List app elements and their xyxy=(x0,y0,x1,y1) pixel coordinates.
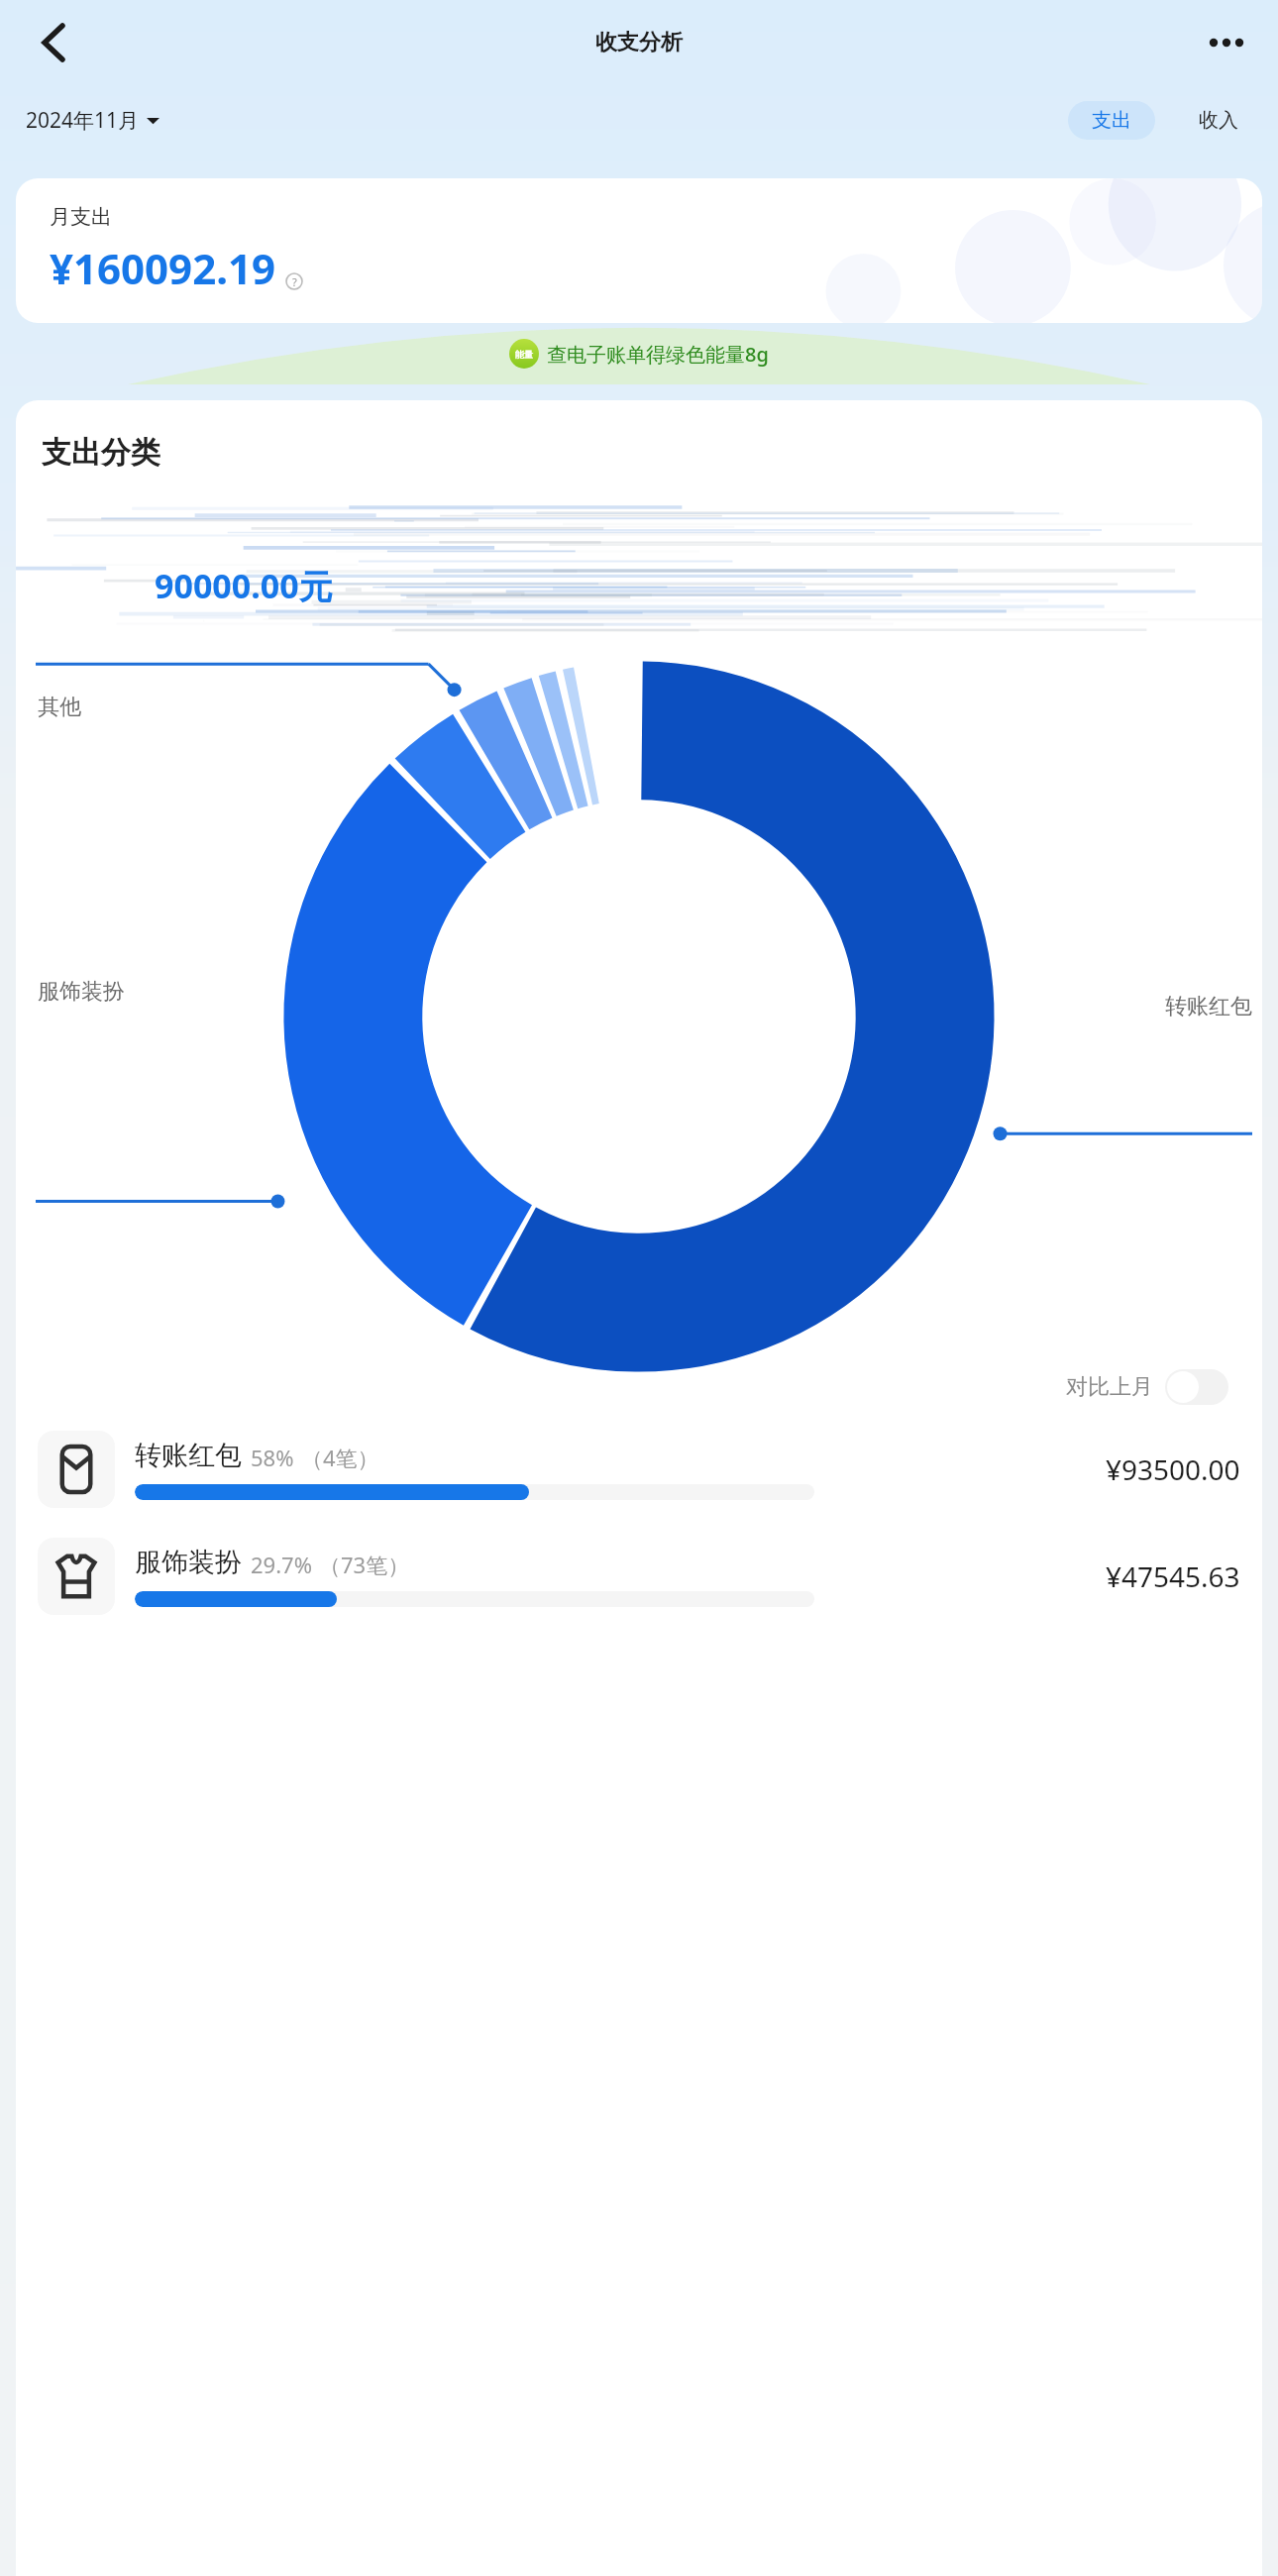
staticText: 29.7% xyxy=(251,1550,312,1579)
button[interactable]: 转账红包 xyxy=(16,1425,1262,1514)
staticText: （4笔） xyxy=(301,1443,379,1472)
staticText: 月支出 xyxy=(50,204,112,230)
staticText: 能量 xyxy=(515,349,533,360)
staticText: （73笔） xyxy=(319,1550,410,1579)
staticText: ? xyxy=(292,274,297,289)
staticText: 2024年11月 xyxy=(26,106,140,135)
button[interactable]: 收入 xyxy=(1185,101,1252,140)
staticText: 收入 xyxy=(1199,108,1238,133)
staticText: 支出分类 xyxy=(42,434,160,472)
staticText: 支出 xyxy=(1092,108,1131,133)
button[interactable]: 支出 xyxy=(1068,101,1155,140)
button[interactable]: 能量 xyxy=(501,335,777,373)
button[interactable]: Help xyxy=(285,272,303,290)
button[interactable]: 服饰装扮 xyxy=(16,1532,1262,1621)
staticText: 收支分析 xyxy=(595,29,683,56)
staticText: 对比上月 xyxy=(1066,1373,1153,1401)
staticText: 90000.00元 xyxy=(155,563,333,608)
staticText: ¥47545.63 xyxy=(1106,1557,1240,1595)
staticText: 58% xyxy=(251,1443,294,1472)
staticText: ¥160092.19 xyxy=(50,240,276,296)
staticText: ¥93500.00 xyxy=(1106,1450,1240,1488)
button[interactable]: 2024年11月 xyxy=(20,102,165,139)
button[interactable]: Back xyxy=(18,7,89,78)
staticText: 服饰装扮 xyxy=(135,1546,242,1579)
staticText: 查电子账单得绿色能量8g xyxy=(547,341,769,368)
staticText: 转账红包 xyxy=(1165,993,1252,1020)
button[interactable]: More options xyxy=(1195,11,1258,74)
button[interactable]: 对比上月 xyxy=(1060,1363,1234,1411)
staticText: 服饰装扮 xyxy=(38,978,125,1006)
staticText: 转账红包 xyxy=(135,1439,242,1472)
staticText: 其他 xyxy=(38,694,81,721)
button[interactable]: 月支出 xyxy=(16,178,1262,323)
